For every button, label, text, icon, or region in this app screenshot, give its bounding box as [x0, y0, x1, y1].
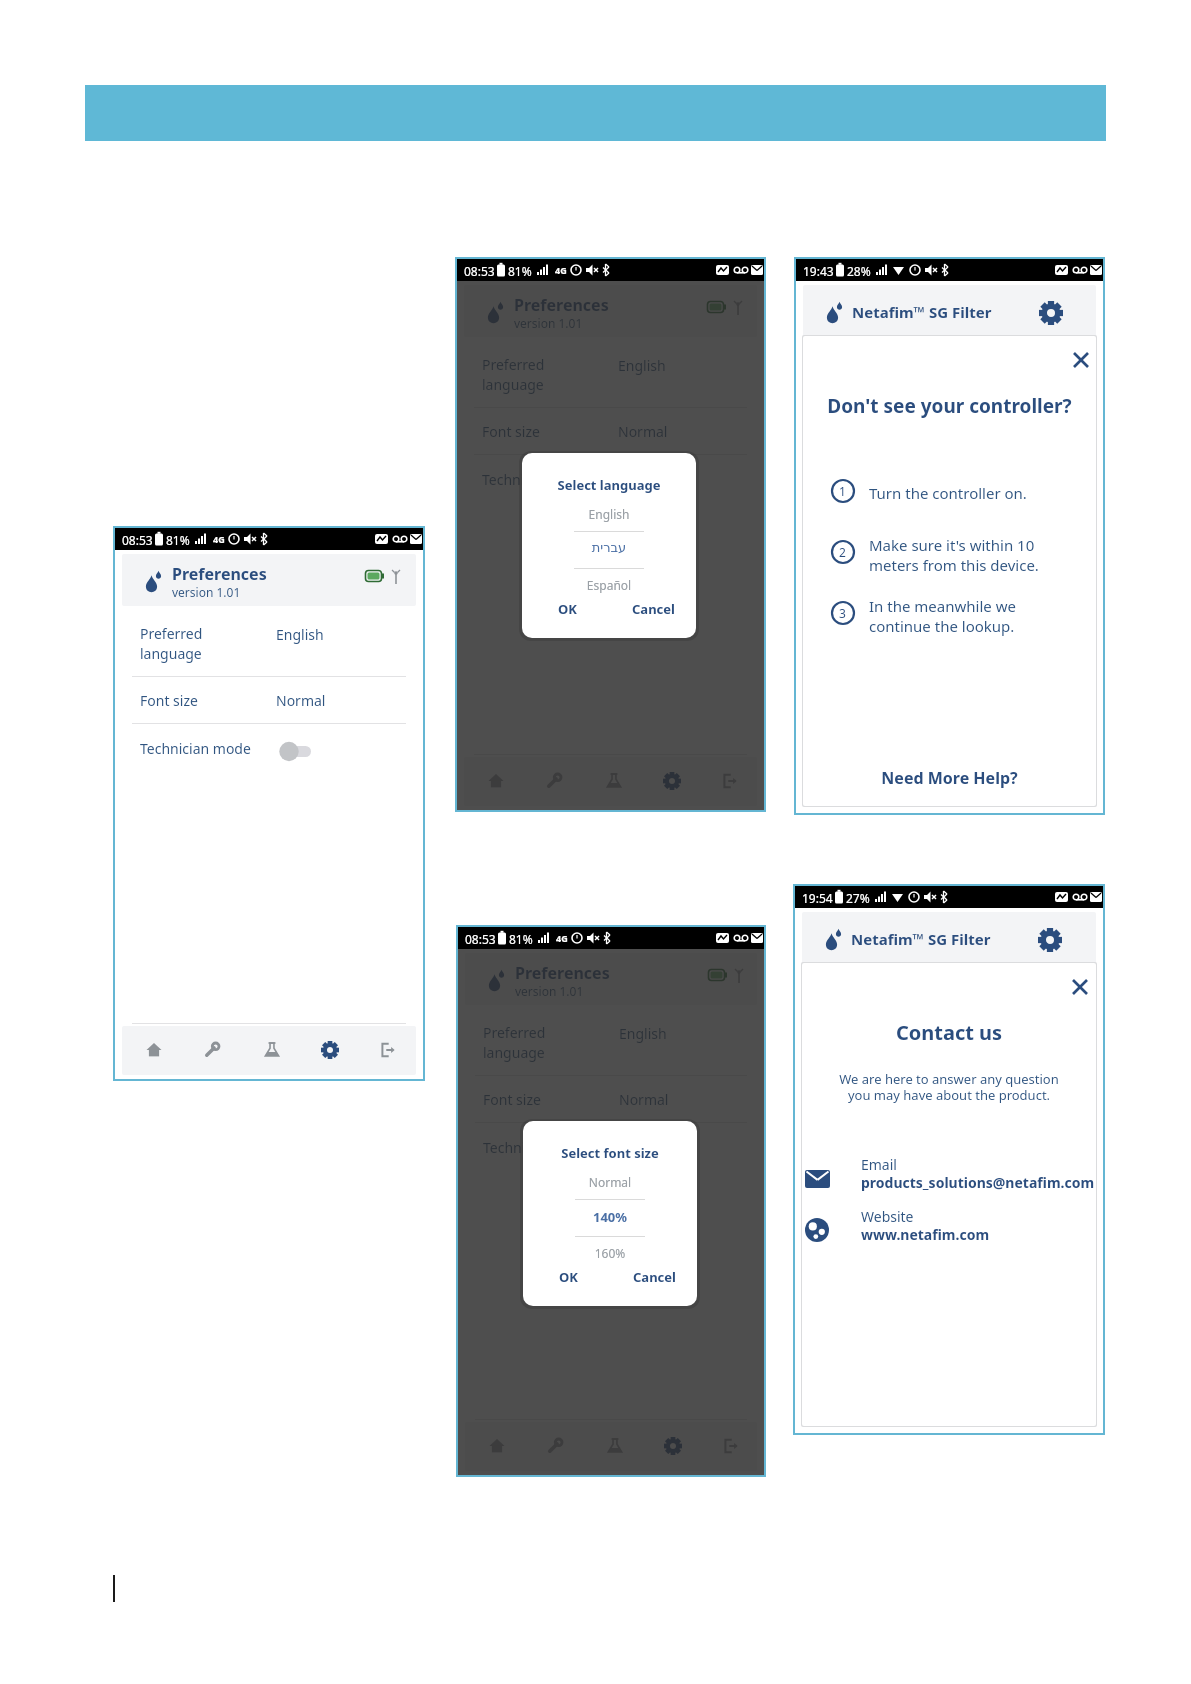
staticText: Normal [523, 1174, 697, 1190]
staticText: you may have about the product. [795, 1086, 1103, 1104]
staticText: 08:53 [465, 931, 496, 947]
staticText: In the meanwhile we [869, 596, 1016, 616]
staticText: products_solutions@netafim.com [861, 1173, 1095, 1192]
button[interactable] [135, 1035, 171, 1071]
staticText: language [140, 644, 202, 663]
button[interactable] [1067, 974, 1095, 1002]
button[interactable]: OK [552, 596, 598, 620]
staticText: continue the lookup. [869, 616, 1015, 636]
button[interactable] [652, 1431, 688, 1467]
button[interactable] [801, 1204, 1091, 1254]
button[interactable] [309, 1035, 345, 1071]
staticText: Preferences [172, 563, 267, 585]
staticText: 19:54 [802, 890, 833, 906]
staticText: Don't see your controller? [796, 393, 1103, 419]
staticText: Make sure it's within 10 [869, 535, 1035, 555]
button[interactable] [135, 620, 405, 664]
staticText: Font size [483, 1090, 541, 1109]
staticText: 08:53 [464, 263, 495, 279]
button[interactable]: OK [553, 1264, 599, 1288]
button[interactable] [193, 1035, 229, 1071]
button[interactable] [1034, 295, 1068, 329]
staticText: Normal [618, 422, 668, 441]
button[interactable] [1068, 347, 1096, 375]
button[interactable]: Cancel [627, 1264, 689, 1288]
staticText: Preferred [482, 355, 545, 374]
staticText: version 1.01 [515, 983, 584, 999]
staticText: English [276, 625, 324, 644]
staticText: Technician mode [483, 1138, 594, 1157]
staticText: Technician mode [482, 470, 593, 489]
button[interactable] [856, 759, 1046, 789]
staticText: Netafim™ SG Filter [851, 929, 991, 949]
staticText: 1 [839, 483, 846, 499]
staticText: Español [522, 577, 696, 593]
staticText: version 1.01 [514, 315, 583, 331]
button[interactable] [477, 351, 747, 395]
staticText: 140% [523, 1208, 697, 1226]
staticText: 08:53 [122, 532, 153, 548]
button[interactable]: Cancel [626, 596, 688, 620]
staticText: 3 [839, 605, 846, 621]
staticText: We are here to answer any question [795, 1070, 1103, 1088]
staticText: language [483, 1043, 545, 1062]
staticText: Select language [522, 476, 696, 494]
staticText: Contact us [795, 1019, 1103, 1046]
staticText: Netafim™ SG Filter [852, 302, 992, 322]
staticText: 81% [166, 532, 190, 548]
staticText: OK [559, 1268, 578, 1286]
staticText: www.netafim.com [861, 1225, 990, 1244]
staticText: Technician mode [140, 739, 251, 758]
staticText: meters from this device. [869, 555, 1039, 575]
staticText: 4G [213, 533, 225, 545]
staticText: version 1.01 [172, 584, 241, 600]
staticText: 27% [846, 890, 870, 906]
button[interactable] [251, 1035, 287, 1071]
staticText: Cancel [632, 600, 675, 618]
staticText: 81% [508, 263, 532, 279]
staticText: English [619, 1024, 667, 1043]
button[interactable] [367, 1035, 403, 1071]
staticText: 4G [555, 264, 567, 276]
staticText: English [618, 356, 666, 375]
staticText: 19:43 [803, 263, 834, 279]
staticText: 4G [556, 932, 568, 944]
staticText: language [482, 375, 544, 394]
staticText: Normal [619, 1090, 669, 1109]
staticText: 2 [839, 544, 846, 560]
button[interactable] [618, 1133, 662, 1163]
staticText: Cancel [633, 1268, 676, 1286]
staticText: Need More Help? [796, 767, 1103, 789]
button[interactable] [801, 1150, 1091, 1200]
button[interactable] [477, 766, 513, 802]
staticText: Website [861, 1207, 914, 1226]
button[interactable] [651, 766, 687, 802]
staticText: Font size [482, 422, 540, 441]
staticText: Normal [276, 691, 326, 710]
staticText: OK [558, 600, 577, 618]
button[interactable] [478, 1019, 748, 1063]
button[interactable] [593, 766, 629, 802]
button[interactable] [1033, 922, 1067, 956]
button[interactable] [594, 1431, 630, 1467]
staticText: Select font size [523, 1144, 697, 1162]
staticText: 81% [509, 931, 533, 947]
staticText: Preferences [514, 294, 609, 316]
button[interactable] [617, 465, 661, 495]
staticText: Email [861, 1155, 897, 1174]
staticText: Font size [140, 691, 198, 710]
staticText: Turn the controller on. [869, 483, 1027, 503]
staticText: Preferred [483, 1023, 546, 1042]
button[interactable] [275, 734, 319, 764]
button[interactable] [478, 1431, 514, 1467]
staticText: Preferences [515, 962, 610, 984]
button[interactable] [710, 1431, 746, 1467]
staticText: 160% [523, 1245, 697, 1261]
button[interactable] [709, 766, 745, 802]
button[interactable] [535, 766, 571, 802]
staticText: עברית [522, 540, 696, 555]
staticText: English [522, 506, 696, 522]
staticText: Preferred [140, 624, 203, 643]
staticText: 28% [847, 263, 871, 279]
button[interactable] [536, 1431, 572, 1467]
